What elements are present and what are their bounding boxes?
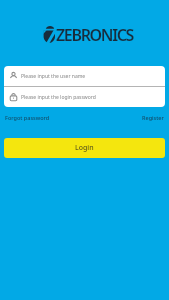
other: Login password [10,93,17,101]
staticText: Please input the user name [21,73,86,80]
button[interactable]: Login password [4,87,165,107]
button[interactable]: Forgot password [5,114,50,121]
other: Zebronics logo [43,25,55,43]
button[interactable]: Login [4,138,165,158]
button[interactable]: User name [4,66,165,86]
staticText: Login [75,143,94,153]
staticText: Please input the login password [21,94,96,101]
other: User name [10,72,17,80]
staticText: ZEBRONICS [56,24,134,46]
button[interactable]: Register [142,114,164,121]
